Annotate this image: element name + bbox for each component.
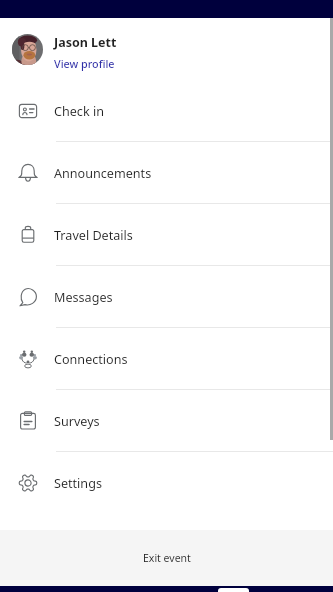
button[interactable]: Exit event [0,530,333,586]
button[interactable]: Jason Lett [0,18,333,80]
button[interactable]: Travel Details [0,204,333,265]
other: Surveys [18,411,38,431]
staticText: Check in [54,103,104,120]
staticText: Connections [54,351,128,368]
staticText: Messages [54,289,113,306]
staticText: Exit event [143,551,191,565]
staticText: View profile [54,56,115,71]
staticText: Announcements [54,165,152,182]
button[interactable]: Announcements [0,142,333,203]
staticText: Jason Lett [54,34,117,51]
other: Messages [18,287,38,307]
other: Travel Details [18,225,38,245]
button[interactable]: Settings [0,452,333,513]
other: Settings [18,473,38,493]
other: Check in [18,101,38,121]
other: Connections [18,349,38,369]
button[interactable]: Surveys [0,390,333,451]
button[interactable]: Connections [0,328,333,389]
button[interactable]: Check in [0,80,333,141]
button[interactable]: Messages [0,266,333,327]
other: Announcements [18,163,38,183]
staticText: Surveys [54,413,100,430]
staticText: Settings [54,475,102,492]
staticText: Travel Details [54,227,133,244]
